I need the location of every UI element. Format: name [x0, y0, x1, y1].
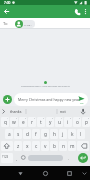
- staticText: not: [60, 109, 66, 114]
- staticText: j: [62, 131, 64, 138]
- staticText: 4: [34, 117, 35, 119]
- staticText: t: [40, 119, 42, 126]
- button[interactable]: +1 50...: [15, 20, 35, 28]
- staticText: thanks: [10, 109, 22, 114]
- button[interactable]: p: [82, 117, 90, 127]
- button[interactable]: s: [14, 129, 22, 139]
- button[interactable]: Merry Christmas and happy new year!: [14, 93, 88, 106]
- button[interactable]: [16, 169, 25, 178]
- staticText: ,: [16, 156, 18, 161]
- button[interactable]: a: [5, 129, 13, 139]
- button[interactable]: f: [32, 129, 40, 139]
- staticText: 7: [61, 117, 62, 119]
- staticText: l: [80, 131, 82, 138]
- staticText: e: [22, 119, 25, 126]
- staticText: w: [12, 119, 16, 126]
- staticText: o: [76, 119, 79, 126]
- button[interactable]: not: [60, 109, 66, 114]
- button[interactable]: v: [41, 141, 49, 151]
- staticText: 2: [16, 117, 17, 119]
- button[interactable]: l: [77, 129, 85, 139]
- button[interactable]: n: [59, 141, 67, 151]
- button[interactable]: w: [10, 117, 18, 127]
- staticText: 6: [52, 117, 53, 119]
- button[interactable]: b: [50, 141, 58, 151]
- button[interactable]: ,: [14, 154, 19, 162]
- button[interactable]: t: [37, 117, 45, 127]
- staticText: ?123: [2, 155, 9, 159]
- button[interactable]: r: [28, 117, 36, 127]
- staticText: 1: [7, 117, 8, 119]
- staticText: SMS: [80, 102, 84, 104]
- staticText: .: [68, 156, 70, 161]
- button[interactable]: [28, 155, 63, 161]
- button[interactable]: k: [68, 129, 76, 139]
- staticText: To: [3, 21, 8, 27]
- button[interactable]: h: [50, 129, 58, 139]
- staticText: n: [62, 143, 65, 150]
- button[interactable]: [78, 153, 88, 163]
- button[interactable]: u: [55, 117, 63, 127]
- button[interactable]: [0, 5, 13, 18]
- staticText: u: [58, 119, 61, 126]
- button[interactable]: e: [19, 117, 27, 127]
- button[interactable]: m: [68, 141, 76, 151]
- button[interactable]: y: [46, 117, 54, 127]
- staticText: Merry Christmas and happy new year!: [18, 97, 81, 102]
- button[interactable]: d: [23, 129, 31, 139]
- staticText: 0: [88, 117, 89, 119]
- staticText: 7:00: [4, 1, 11, 5]
- button[interactable]: [77, 141, 89, 151]
- button[interactable]: z: [14, 141, 22, 151]
- staticText: 8: [70, 117, 71, 119]
- staticText: +1 50...: [24, 23, 33, 26]
- staticText: z: [17, 143, 20, 150]
- staticText: x: [26, 143, 29, 150]
- staticText: q: [4, 119, 7, 126]
- button[interactable]: thanks: [10, 109, 22, 114]
- button[interactable]: [64, 5, 90, 18]
- button[interactable]: [65, 169, 74, 178]
- button[interactable]: g: [41, 129, 49, 139]
- staticText: v: [44, 143, 47, 150]
- button[interactable]: q: [1, 117, 9, 127]
- button[interactable]: [1, 141, 13, 151]
- staticText: h: [53, 131, 56, 138]
- staticText: p: [85, 119, 88, 126]
- staticText: d: [26, 131, 29, 138]
- staticText: 9: [79, 117, 80, 119]
- button[interactable]: o: [73, 117, 81, 127]
- staticText: b: [53, 143, 56, 150]
- staticText: f: [35, 131, 37, 138]
- staticText: a: [8, 131, 11, 138]
- staticText: k: [71, 131, 74, 138]
- staticText: y: [49, 119, 52, 126]
- staticText: r: [31, 119, 33, 126]
- button[interactable]: .: [66, 154, 71, 162]
- button[interactable]: x: [23, 141, 31, 151]
- staticText: m: [70, 143, 75, 150]
- button[interactable]: c: [32, 141, 40, 151]
- staticText: 3: [25, 117, 26, 119]
- staticText: g: [44, 131, 47, 138]
- button[interactable]: [1, 153, 13, 163]
- staticText: Conversation with +1 505-550-9582 Tue 9:…: [21, 85, 70, 88]
- staticText: c: [35, 143, 38, 150]
- staticText: 5: [43, 117, 44, 119]
- staticText: i: [67, 119, 69, 126]
- button[interactable]: j: [59, 129, 67, 139]
- button[interactable]: [41, 169, 50, 178]
- staticText: s: [17, 131, 20, 138]
- button[interactable]: [3, 95, 12, 104]
- button[interactable]: i: [64, 117, 72, 127]
